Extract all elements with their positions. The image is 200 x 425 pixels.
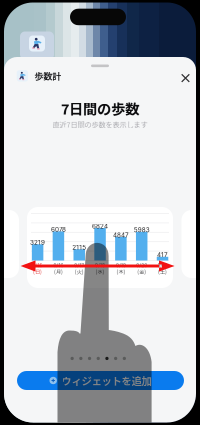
staticText: 3219 xyxy=(30,239,45,246)
button[interactable]: 閉じる xyxy=(176,69,194,87)
staticText: 4847 xyxy=(113,231,129,239)
staticText: 9/18 xyxy=(95,262,105,268)
staticText: 2115 xyxy=(72,244,86,251)
button[interactable]: ウィジェットを追加 xyxy=(17,371,184,390)
staticText: 5983 xyxy=(134,226,150,234)
staticText: 9/16 xyxy=(53,262,63,268)
staticText: (火) xyxy=(75,268,84,275)
staticText: 9/19 xyxy=(116,262,126,268)
staticText: 417 xyxy=(157,251,168,259)
staticText: (金) xyxy=(137,268,146,275)
staticText: 9/17 xyxy=(74,262,84,268)
staticText: (日) xyxy=(33,268,42,275)
button[interactable]: 歩数計 xyxy=(15,67,63,84)
staticText: 直近7日間の歩数を表示します xyxy=(52,119,147,129)
staticText: (土) xyxy=(158,268,167,275)
staticText: (木) xyxy=(116,268,125,275)
staticText: 7日間の歩数 xyxy=(61,98,139,119)
staticText: (月) xyxy=(54,268,63,275)
staticText: (水) xyxy=(96,268,105,275)
staticText: 歩数計 xyxy=(34,69,61,82)
staticText: 6078 xyxy=(51,226,66,233)
staticText: 6824 xyxy=(92,222,108,230)
staticText: 9/15 xyxy=(33,262,43,268)
staticText: ウィジェットを追加 xyxy=(61,373,151,388)
staticText: 9/20 xyxy=(136,262,147,268)
staticText: 9/21 xyxy=(157,262,167,268)
